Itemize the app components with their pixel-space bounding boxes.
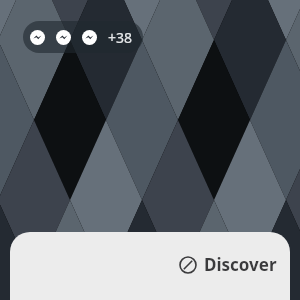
staticText: +38: [108, 28, 133, 47]
staticText: Discover: [204, 253, 277, 276]
button[interactable]: +38: [23, 21, 143, 53]
button[interactable]: Discover: [179, 253, 277, 276]
